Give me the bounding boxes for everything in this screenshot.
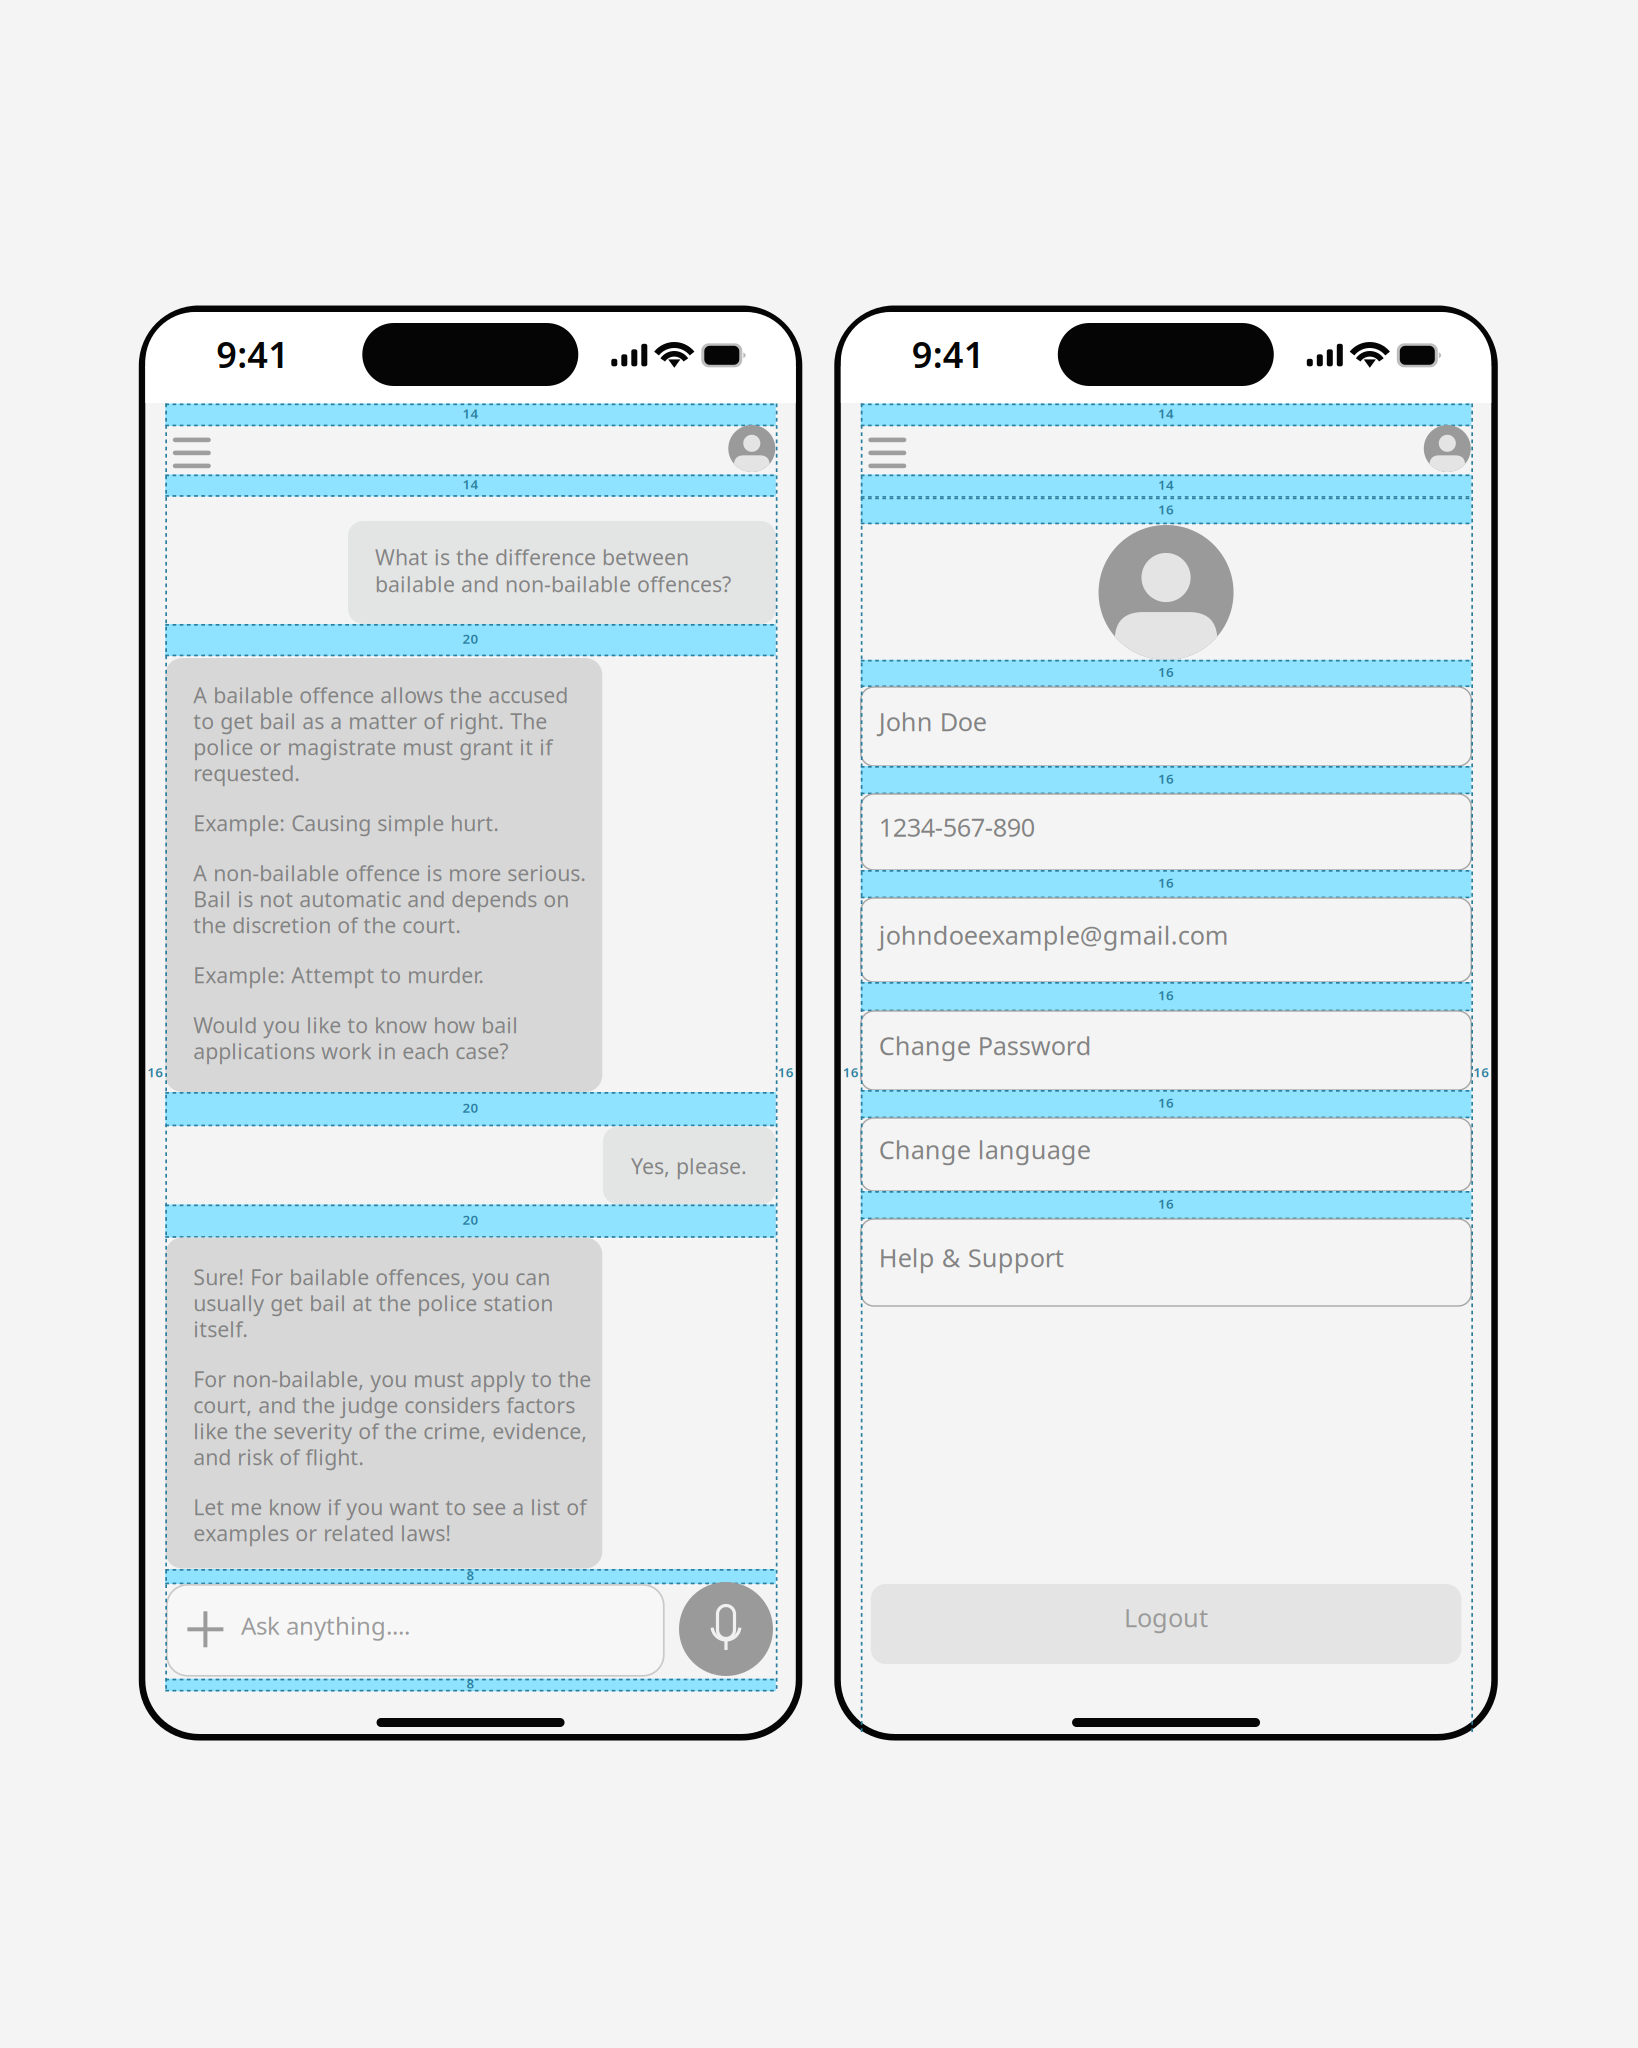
staticText: 16: [1158, 500, 1174, 518]
button[interactable]: 1234-567-890: [0, 0, 1638, 2048]
staticText: 16: [1158, 1195, 1174, 1212]
staticText: 16: [1158, 770, 1174, 787]
staticText: 16: [147, 1063, 163, 1081]
button[interactable]: Account: [0, 0, 1638, 2048]
staticText: John Doe: [879, 704, 987, 738]
staticText: 16: [1158, 1094, 1174, 1111]
staticText: 16: [1473, 1063, 1489, 1081]
staticText: 16: [778, 1063, 794, 1081]
button[interactable]: Logout: [0, 0, 1638, 2048]
staticText: usually get bail at the police station: [193, 1289, 553, 1317]
staticText: 9:41: [912, 330, 985, 378]
button[interactable]: Menu: [0, 0, 1638, 2048]
staticText: For non-bailable, you must apply to the: [193, 1365, 591, 1393]
staticText: 14: [1158, 404, 1174, 422]
button[interactable]: Account: [0, 0, 1638, 2048]
staticText: 14: [463, 404, 479, 422]
staticText: 16: [1158, 986, 1174, 1004]
staticText: Let me know if you want to see a list of: [193, 1493, 586, 1521]
staticText: bailable and non-bailable offences?: [375, 570, 731, 598]
staticText: Sure! For bailable offences, you can: [193, 1263, 550, 1291]
staticText: A non-bailable offence is more serious.: [193, 859, 586, 887]
staticText: Bail is not automatic and depends on: [193, 885, 569, 913]
staticText: examples or related laws!: [193, 1519, 451, 1547]
staticText: 9:41: [216, 330, 289, 378]
staticText: police or magistrate must grant it if: [193, 733, 552, 761]
staticText: Yes, please.: [631, 1152, 747, 1180]
staticText: like the severity of the crime, evidence…: [193, 1417, 587, 1445]
staticText: Help & Support: [879, 1240, 1064, 1274]
staticText: 20: [463, 1211, 479, 1228]
staticText: Would you like to know how bail: [193, 1011, 518, 1039]
staticText: itself.: [193, 1315, 248, 1343]
staticText: 16: [1158, 874, 1174, 891]
staticText: 16: [843, 1063, 859, 1081]
staticText: requested.: [193, 759, 300, 787]
staticText: to get bail as a matter of right. The: [193, 707, 547, 735]
staticText: Example: Attempt to murder.: [193, 961, 484, 989]
button[interactable]: Change language: [0, 0, 1638, 2048]
staticText: 1234-567-890: [879, 810, 1035, 844]
staticText: Ask anything....: [241, 1610, 410, 1641]
staticText: Example: Causing simple hurt.: [193, 809, 499, 837]
staticText: johndoeexample@gmail.com: [879, 918, 1229, 952]
staticText: 8: [467, 1675, 475, 1692]
staticText: A bailable offence allows the accused: [193, 681, 568, 709]
staticText: 20: [463, 1099, 479, 1116]
staticText: Change Password: [879, 1028, 1092, 1062]
staticText: the discretion of the court.: [193, 911, 461, 939]
staticText: Logout: [1124, 1601, 1208, 1634]
button[interactable]: John Doe: [0, 0, 1638, 2048]
staticText: 8: [467, 1566, 475, 1584]
button[interactable]: Help & Support: [0, 0, 1638, 2048]
staticText: and risk of flight.: [193, 1443, 364, 1471]
button[interactable]: Voice input: [0, 0, 1638, 2048]
button[interactable]: Menu: [0, 0, 1638, 2048]
staticText: 14: [1158, 476, 1174, 493]
staticText: 16: [1158, 663, 1174, 681]
button[interactable]: Ask anything....: [0, 0, 1638, 2048]
staticText: applications work in each case?: [193, 1037, 508, 1065]
staticText: court, and the judge considers factors: [193, 1391, 575, 1419]
staticText: 20: [463, 630, 479, 647]
button[interactable]: Change Password: [0, 0, 1638, 2048]
staticText: 14: [463, 475, 479, 493]
button[interactable]: johndoeexample@gmail.com: [0, 0, 1638, 2048]
staticText: What is the difference between: [375, 543, 689, 571]
staticText: Change language: [879, 1132, 1091, 1166]
